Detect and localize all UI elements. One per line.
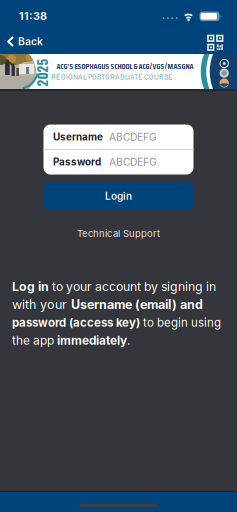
staticText: Password [53,156,101,168]
button[interactable]: Username [43,125,193,149]
button[interactable]: Password [43,150,193,174]
staticText: password (access key) to begin using [12,316,221,329]
button[interactable]: Scan QR Code [207,34,224,51]
button[interactable]: Technical Support [58,225,178,241]
staticText: Back [18,35,43,48]
staticText: Technical Support [77,228,160,239]
button[interactable]: Login [43,182,193,210]
staticText: ABCDEFG [109,131,157,143]
staticText: ACG'S ESOPHAGUS SCHOOL & ACG/VGS/MASGNA [56,60,193,72]
staticText: Username [53,131,103,143]
staticText: REGIONAL POSTGRADUATE COURSE [51,72,173,81]
staticText: ABCDEFG [109,156,157,168]
staticText: the app immediately. [12,333,130,347]
staticText: with your Username (email) and [12,297,203,312]
staticText: 11:38 [19,9,47,23]
button[interactable]: Back [3,31,47,51]
staticText: 2025 [28,63,56,82]
staticText: Login [105,190,132,202]
staticText: Log in to your account by signing in [12,279,216,294]
